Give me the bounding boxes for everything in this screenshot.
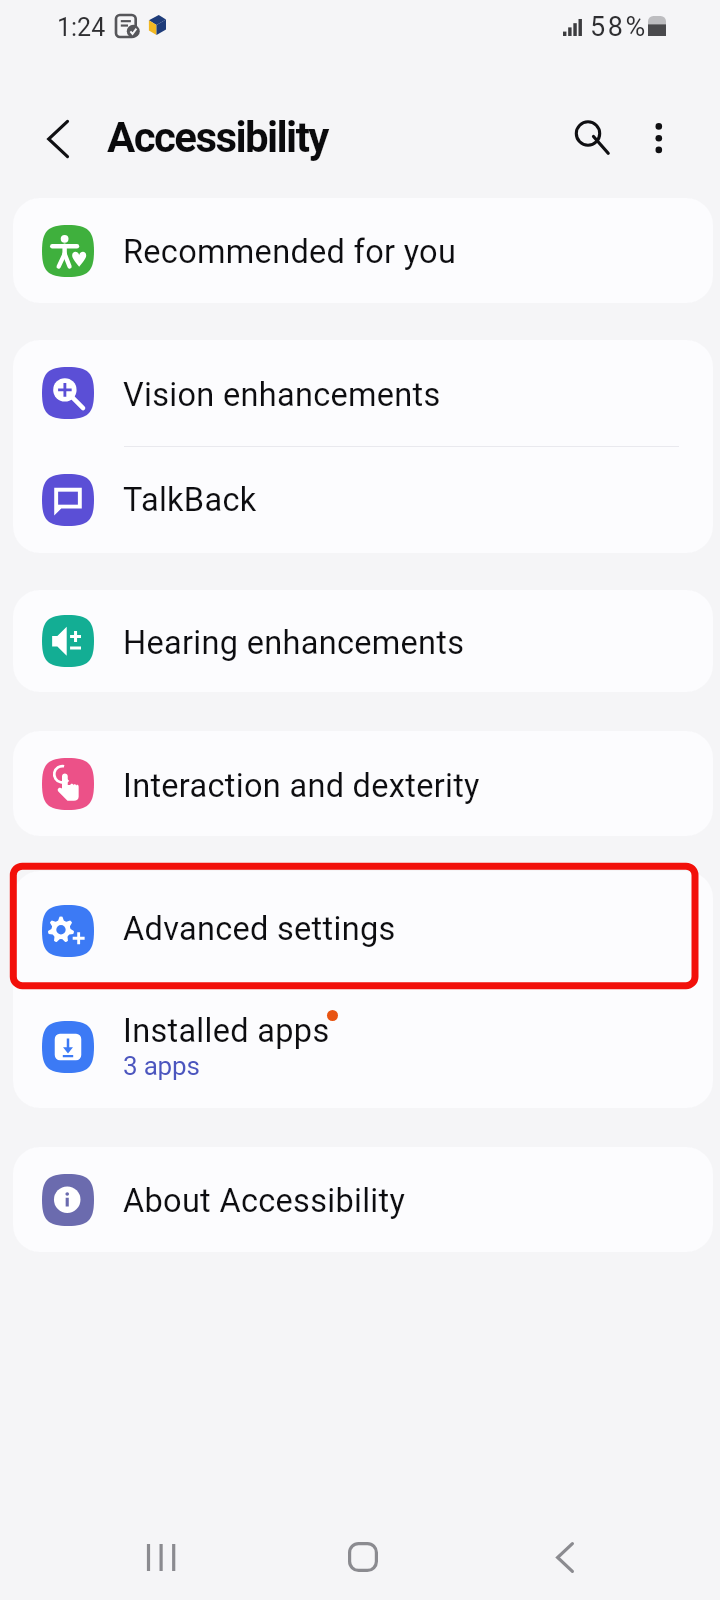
button[interactable]: TalkBack [13,447,713,553]
button[interactable]: About Accessibility [13,1147,713,1252]
staticText: 3 apps [123,1051,200,1081]
button[interactable]: Back [519,1511,611,1600]
button[interactable]: Vision enhancements [13,340,713,446]
button[interactable]: Advanced settings [13,871,713,990]
staticText: 58% [590,11,648,43]
button[interactable]: More options [634,104,684,154]
button[interactable]: Interaction and dexterity [13,731,713,836]
staticText: 1:24 [57,13,106,42]
button[interactable]: Home [317,1511,409,1600]
staticText: TalkBack [123,481,257,519]
staticText: Advanced settings [123,910,396,948]
staticText: Vision enhancements [123,376,441,414]
button[interactable]: Search [563,106,613,156]
staticText: Interaction and dexterity [123,767,480,805]
button[interactable]: Hearing enhancements [13,590,713,692]
staticText: About Accessibility [123,1182,406,1220]
button[interactable]: Recommended for you [13,198,713,303]
staticText: Accessibility [107,113,328,162]
button[interactable]: Navigate up [36,116,82,162]
button[interactable]: Installed apps [13,990,713,1108]
staticText: Hearing enhancements [123,624,465,662]
button[interactable]: Recent apps [115,1511,207,1600]
staticText: Installed apps [123,1012,330,1050]
staticText: Recommended for you [123,233,457,271]
